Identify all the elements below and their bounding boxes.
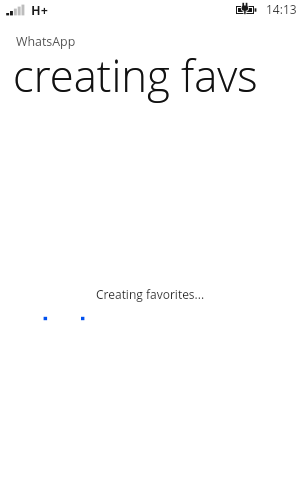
other: Loading: [0, 310, 300, 326]
staticText: 14:13: [266, 1, 297, 17]
button[interactable]: WhatsApp: [0, 26, 300, 108]
staticText: creating favs: [13, 45, 258, 104]
staticText: creating favs: [13, 45, 258, 104]
other: Signal strength and battery status: [0, 0, 300, 20]
staticText: WhatsApp: [16, 33, 76, 50]
staticText: Creating favorites...: [96, 286, 205, 302]
staticText: H+: [31, 2, 48, 19]
